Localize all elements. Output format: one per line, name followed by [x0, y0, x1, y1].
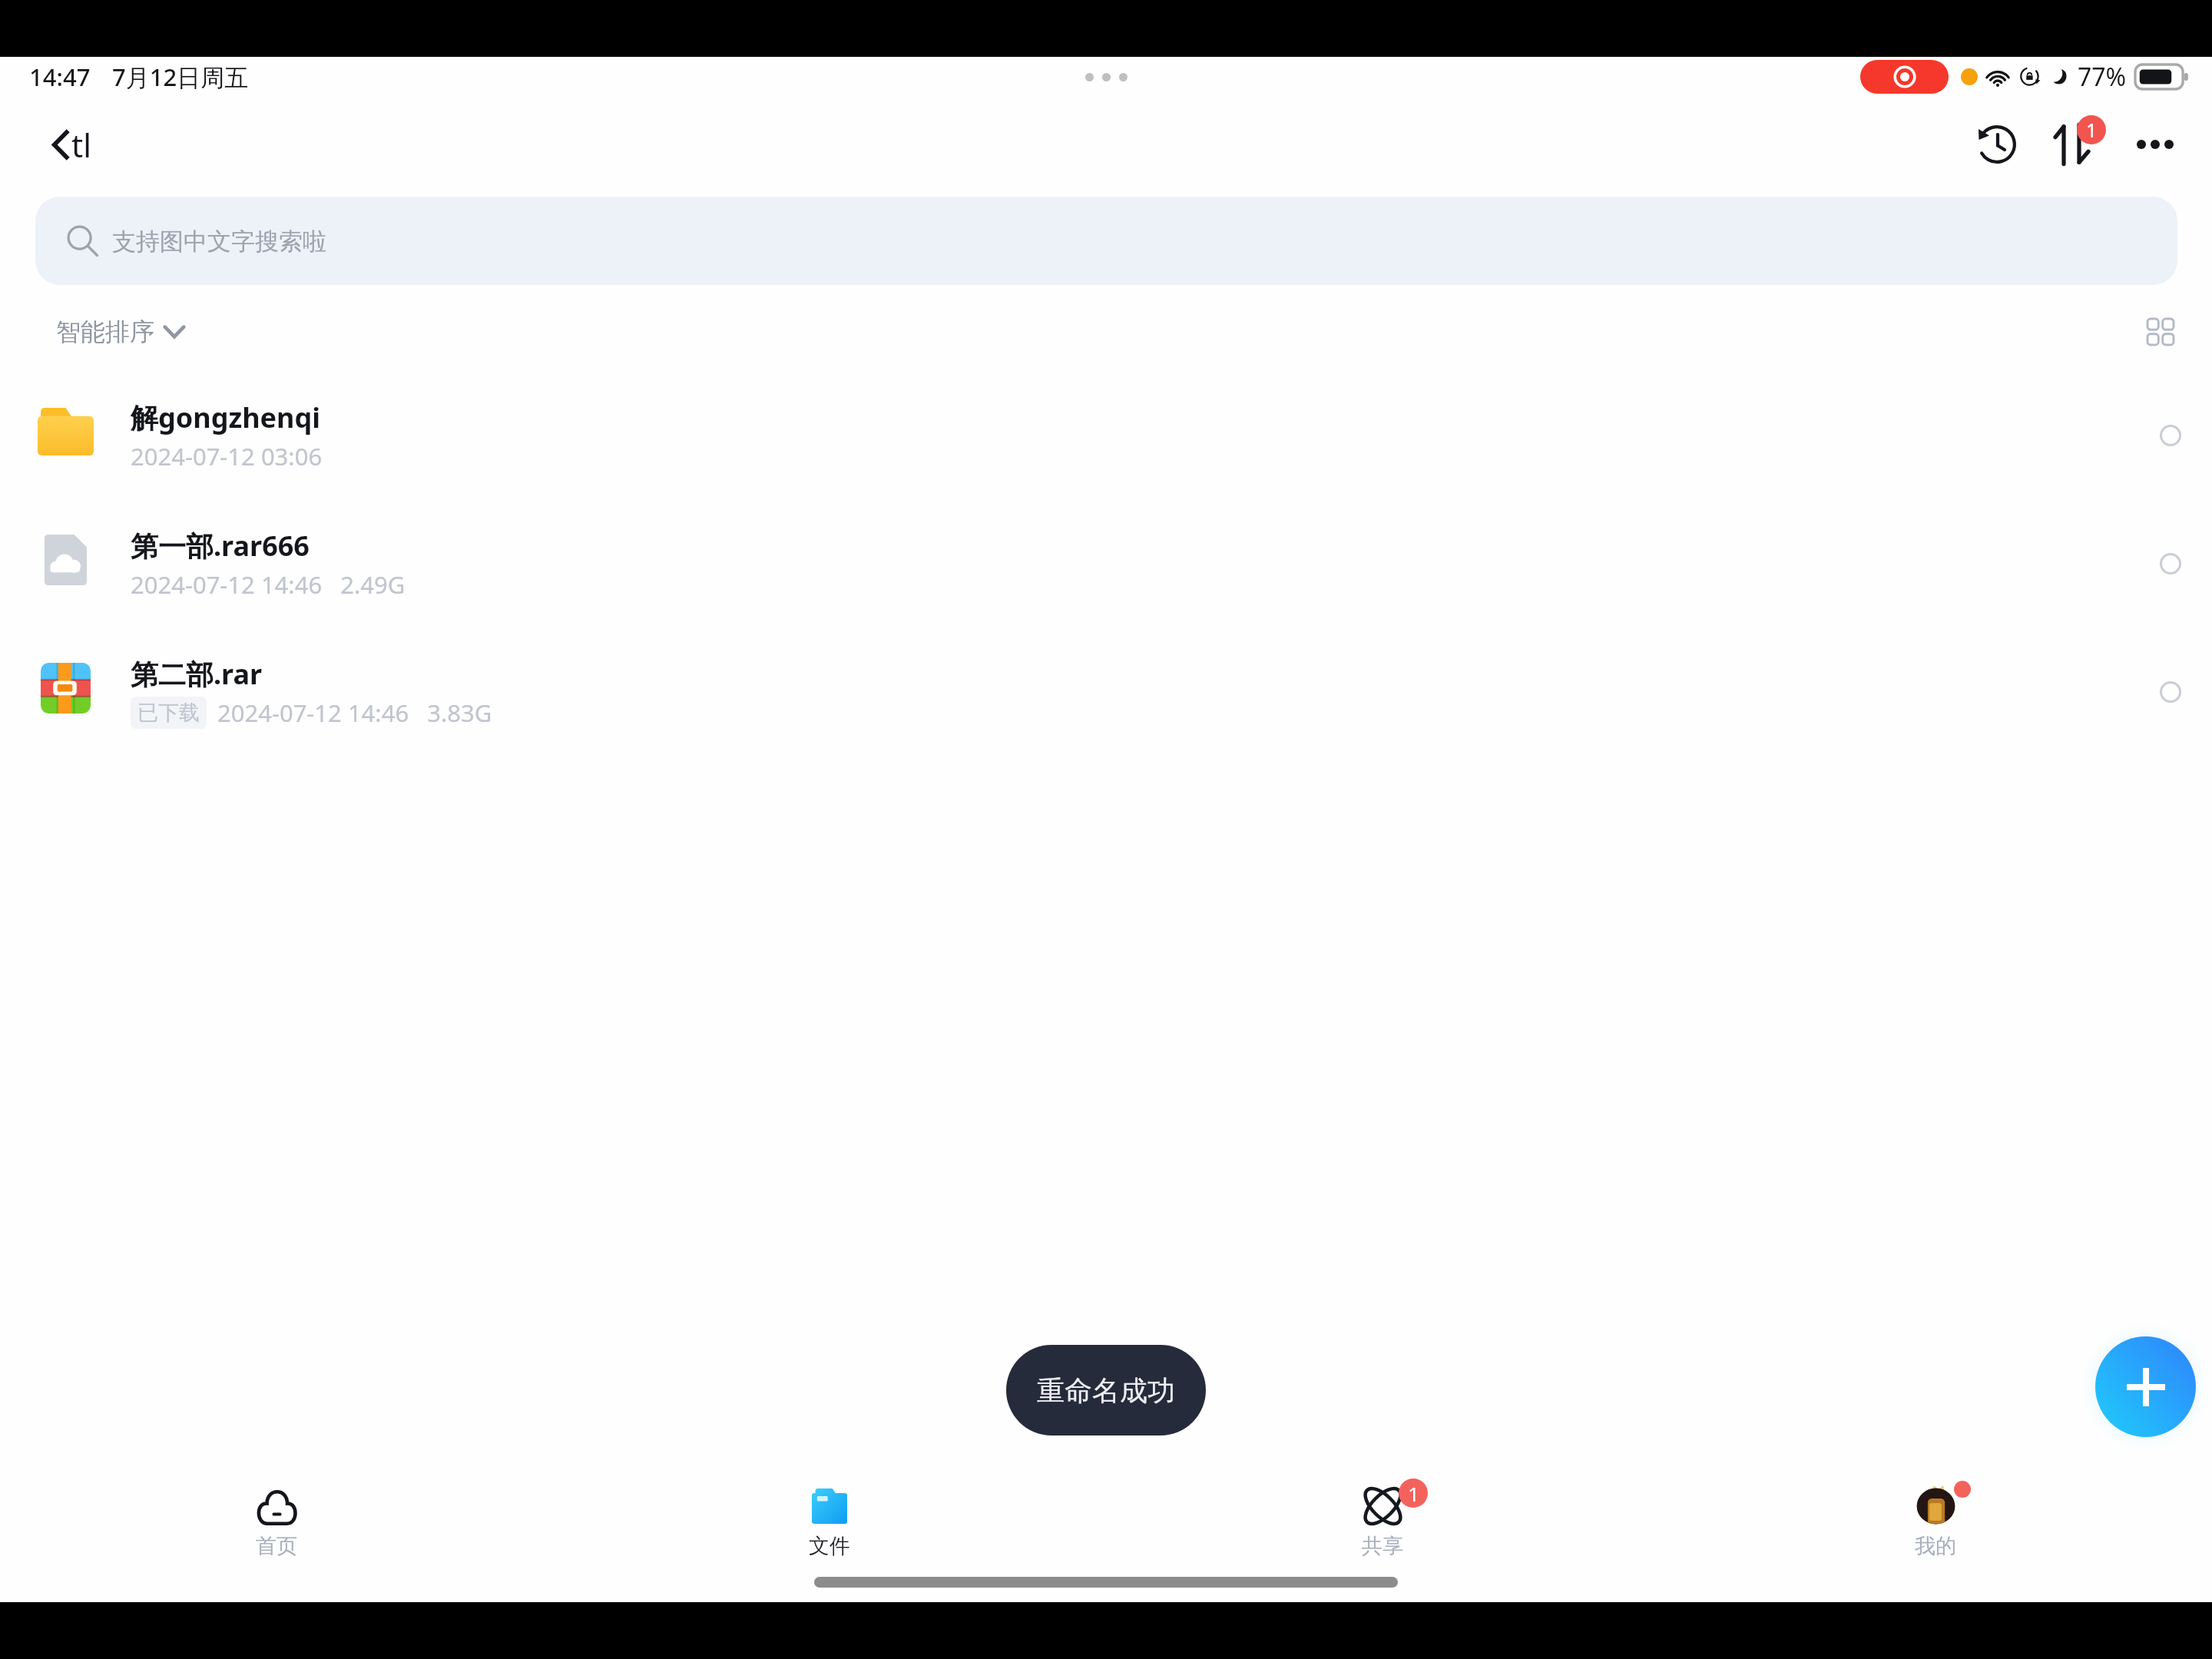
staticText: 1	[1408, 1480, 1419, 1507]
staticText: 7月12日周五	[112, 61, 249, 93]
button[interactable]: Add	[2095, 1336, 2196, 1437]
button[interactable]: 文件	[553, 1417, 1106, 1560]
button[interactable]: 我的	[1659, 1417, 2212, 1560]
button[interactable]: tl	[41, 109, 102, 180]
button[interactable]: Select	[2129, 628, 2212, 756]
button[interactable]: 第二部.rar	[0, 628, 2212, 756]
staticText: 智能排序	[56, 316, 154, 347]
staticText: 支持图中文字搜索啦	[112, 227, 326, 257]
staticText: tl	[71, 123, 91, 167]
button[interactable]: 智能排序	[45, 304, 196, 359]
staticText: 77%	[2078, 60, 2127, 94]
staticText: 首页	[256, 1533, 297, 1559]
button[interactable]: Grid view	[2125, 296, 2196, 367]
staticText: 共享	[1362, 1533, 1403, 1559]
staticText: 重命名成功	[1037, 1373, 1175, 1408]
staticText: 解gongzhenqi	[131, 399, 320, 436]
button[interactable]: 首页	[0, 1417, 553, 1560]
button[interactable]: 1	[1106, 1417, 1659, 1560]
staticText: 2024-07-12 14:46 3.83G	[217, 697, 492, 729]
button[interactable]: 解gongzhenqi	[0, 371, 2212, 499]
staticText: 1	[2086, 117, 2098, 143]
button[interactable]: 第一部.rar666	[0, 499, 2212, 628]
button[interactable]: Transfers	[2034, 106, 2111, 183]
staticText: 14:47	[29, 61, 91, 93]
staticText: 第二部.rar	[131, 655, 263, 693]
staticText: 2024-07-12 03:06	[131, 440, 323, 472]
button[interactable]: Select	[2129, 499, 2212, 628]
button[interactable]: More options	[2117, 106, 2194, 183]
staticText: 我的	[1915, 1533, 1956, 1559]
button[interactable]: Select	[2129, 371, 2212, 499]
button[interactable]: History	[1949, 106, 2026, 183]
staticText: 2024-07-12 14:46 2.49G	[131, 568, 406, 601]
staticText: 文件	[809, 1533, 850, 1559]
button[interactable]: 支持图中文字搜索啦	[35, 197, 2177, 285]
staticText: 第一部.rar666	[131, 527, 310, 565]
staticText: 已下载	[137, 700, 200, 726]
